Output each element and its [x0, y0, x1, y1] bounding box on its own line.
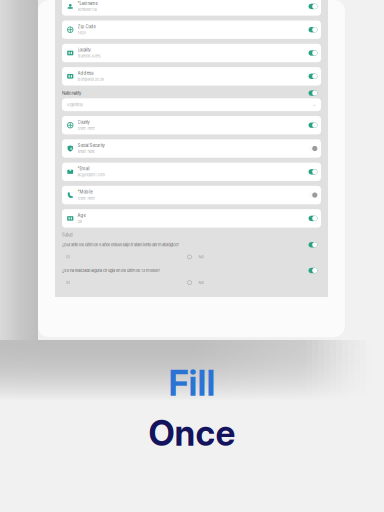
staticText: *Last name: [77, 1, 97, 6]
staticText: Argentina: [66, 102, 82, 107]
staticText: Buenos Aires: [77, 54, 100, 58]
staticText: Sí: [66, 280, 70, 285]
staticText: Address: [77, 71, 93, 76]
staticText: ⌄: [312, 102, 316, 107]
staticText: ¿Se ha realizado alguna cirugía en los ú…: [62, 268, 160, 273]
staticText: No: [198, 254, 203, 259]
button[interactable]: *Last name: [62, 0, 321, 16]
staticText: Echeverria: [77, 7, 96, 12]
button[interactable]: Zip Code: [62, 20, 321, 39]
button[interactable]: Argentina: [62, 98, 321, 111]
staticText: Age: [77, 213, 85, 218]
staticText: 1625: [77, 30, 85, 35]
button[interactable]: Address: [62, 67, 321, 85]
staticText: Nationality: [62, 91, 81, 96]
staticText: Sí: [66, 254, 70, 259]
button[interactable]: Social Security: [62, 139, 321, 158]
staticText: No: [198, 280, 203, 285]
staticText: Salud: [62, 232, 73, 238]
staticText: *Mobile: [77, 190, 92, 195]
staticText: Social Security: [77, 143, 104, 148]
staticText: Once: [148, 412, 235, 454]
staticText: ¿Durante los últimos 5 años estuvo bajo …: [62, 242, 179, 247]
staticText: ac@hopmi.com: [77, 172, 105, 177]
staticText: Bonpland 2029: [77, 77, 103, 82]
staticText: Enter here: [77, 126, 94, 131]
button[interactable]: County: [62, 116, 321, 134]
button[interactable]: Age: [62, 209, 321, 228]
button[interactable]: *Mobile: [62, 186, 321, 204]
staticText: Enter here: [77, 149, 94, 154]
staticText: County: [77, 120, 89, 125]
staticText: *Email: [77, 166, 89, 171]
staticText: Fill: [168, 362, 215, 404]
staticText: Enter here: [77, 196, 94, 201]
button[interactable]: *Email: [62, 163, 321, 181]
staticText: Locality: [77, 47, 90, 52]
button[interactable]: Locality: [62, 44, 321, 62]
staticText: Zip Code: [77, 24, 95, 29]
staticText: 28: [77, 219, 81, 224]
